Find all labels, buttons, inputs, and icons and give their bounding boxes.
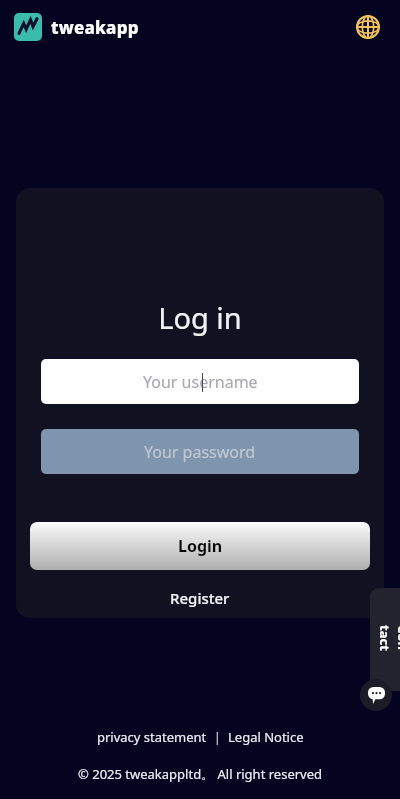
button[interactable]: Open chat [360, 679, 392, 711]
staticText: Your password [144, 441, 256, 463]
button[interactable]: Your username [41, 359, 359, 404]
button[interactable]: Legal Notice [228, 728, 304, 746]
button[interactable]: Your password [41, 429, 359, 474]
staticText: Legal Notice [228, 728, 304, 746]
button[interactable]: tweakapp [14, 13, 139, 41]
staticText: Your username [143, 371, 258, 393]
staticText: Register [170, 588, 230, 608]
staticText: | [207, 728, 228, 746]
staticText: privacy statement [97, 728, 207, 746]
button[interactable]: privacy statement [97, 728, 207, 746]
button[interactable]: Contact us [370, 588, 400, 691]
staticText: Log in [16, 298, 384, 337]
button[interactable]: Login [30, 522, 370, 570]
staticText: Login [178, 535, 223, 557]
staticText: tweakapp [51, 16, 139, 39]
staticText: Contact us [370, 625, 400, 655]
staticText: © 2025 tweakappltd。 All right reserved [78, 765, 323, 783]
button[interactable]: Change language [350, 9, 386, 45]
button[interactable]: Register [16, 584, 384, 612]
